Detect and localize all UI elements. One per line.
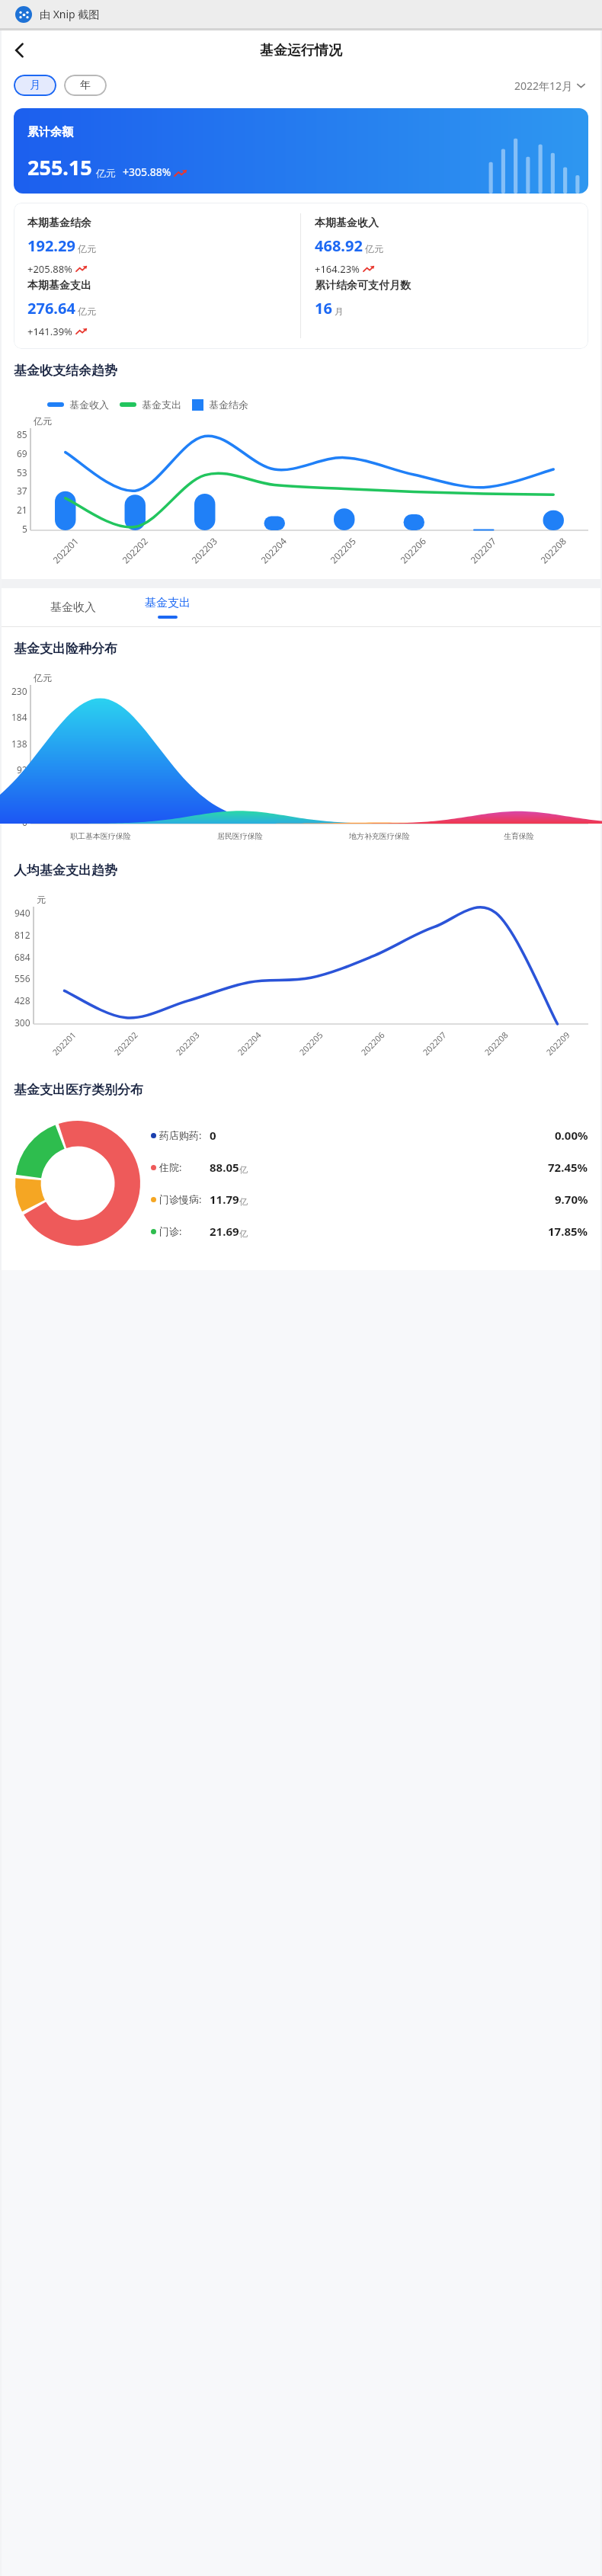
staticText: 基金支出医疗类别分布 (14, 1082, 143, 1098)
staticText: 88.05 (210, 1160, 239, 1175)
staticText: 住院: (159, 1160, 210, 1174)
staticText: 亿元 (34, 672, 52, 683)
staticText: 202203 (173, 1029, 202, 1058)
staticText: 85 (17, 428, 27, 440)
staticText: 53 (17, 466, 27, 478)
button[interactable]: 本期基金支出 (14, 276, 300, 338)
staticText: 202206 (397, 534, 429, 566)
staticText: 21 (17, 504, 27, 516)
staticText: 人均基金支出趋势 (14, 862, 117, 878)
staticText: 基金收入 (50, 600, 96, 615)
button[interactable]: 年 (64, 75, 107, 96)
staticText: 居民医疗保险 (217, 831, 263, 841)
staticText: 37 (17, 485, 27, 497)
staticText: 16 (315, 298, 332, 318)
staticText: 基金支出 (145, 596, 191, 610)
staticText: 202208 (482, 1029, 510, 1058)
staticText: +305.88% (123, 165, 171, 179)
staticText: 230 (11, 685, 27, 697)
button[interactable]: 2022年12月 (511, 75, 588, 96)
staticText: +164.23% (315, 262, 360, 276)
button[interactable]: 累计余额 (14, 108, 588, 194)
button[interactable]: 基金支出 (134, 593, 201, 622)
staticText: 亿 (239, 1228, 248, 1239)
staticText: 门诊: (159, 1224, 210, 1238)
staticText: 202208 (538, 534, 569, 566)
staticText: 255.15 (27, 153, 92, 181)
staticText: 月 (30, 78, 40, 92)
staticText: 11.79 (210, 1192, 239, 1207)
staticText: 202201 (50, 534, 81, 566)
staticText: 21.69 (210, 1224, 239, 1239)
staticText: 亿元 (34, 415, 52, 427)
staticText: 本期基金收入 (315, 216, 379, 230)
staticText: 5 (22, 523, 27, 535)
staticText: 基金支出 (142, 398, 181, 411)
staticText: 202202 (119, 534, 150, 566)
staticText: 基金支出险种分布 (14, 641, 117, 657)
button[interactable]: 返回 (2, 32, 38, 69)
staticText: 门诊慢病: (159, 1192, 210, 1206)
staticText: 0.00% (555, 1128, 588, 1143)
staticText: 69 (17, 447, 27, 459)
staticText: 基金结余 (209, 398, 248, 411)
staticText: 940 (14, 907, 30, 919)
button[interactable]: 月 (14, 75, 56, 96)
staticText: 202207 (468, 534, 499, 566)
staticText: 亿元 (78, 306, 96, 317)
staticText: 468.92 (315, 235, 363, 256)
staticText: 由 Xnip 截图 (40, 7, 100, 21)
button[interactable]: 本期基金收入 (301, 213, 588, 276)
staticText: 202201 (50, 1029, 78, 1058)
staticText: 202203 (189, 534, 220, 566)
staticText: +141.39% (27, 325, 72, 338)
staticText: 202207 (420, 1029, 449, 1058)
staticText: 202204 (258, 534, 289, 566)
staticText: 元 (37, 894, 46, 905)
staticText: 46 (17, 790, 27, 802)
staticText: 0 (22, 816, 27, 828)
staticText: 亿 (239, 1164, 248, 1175)
staticText: 生育保险 (504, 831, 534, 841)
staticText: 0 (210, 1128, 216, 1143)
staticText: 202206 (358, 1029, 387, 1058)
staticText: 地方补充医疗保险 (349, 831, 410, 841)
staticText: 累计余额 (27, 125, 73, 139)
staticText: 亿 (239, 1196, 248, 1207)
staticText: 684 (14, 951, 30, 963)
staticText: 202204 (235, 1029, 264, 1058)
staticText: 192.29 (27, 235, 75, 256)
staticText: 184 (11, 711, 27, 723)
staticText: 17.85% (548, 1224, 588, 1239)
staticText: 300 (14, 1016, 30, 1029)
staticText: 202202 (111, 1029, 140, 1058)
staticText: 428 (14, 994, 30, 1006)
staticText: 本期基金结余 (27, 216, 91, 230)
staticText: 基金运行情况 (260, 42, 342, 59)
staticText: 138 (11, 738, 27, 750)
staticText: 亿元 (365, 243, 383, 254)
staticText: 职工基本医疗保险 (70, 831, 131, 841)
button[interactable]: 基金收入 (40, 594, 107, 621)
staticText: 202205 (327, 534, 359, 566)
staticText: 92 (17, 763, 27, 776)
staticText: 月 (335, 306, 344, 317)
staticText: +205.88% (27, 262, 72, 276)
staticText: 202209 (544, 1029, 572, 1058)
staticText: 亿元 (78, 243, 96, 254)
staticText: 2022年12月 (514, 78, 573, 93)
staticText: 202205 (297, 1029, 325, 1058)
staticText: 556 (14, 972, 30, 984)
staticText: 药店购药: (159, 1128, 210, 1142)
staticText: 276.64 (27, 298, 75, 318)
staticText: 基金收入 (69, 398, 109, 411)
button[interactable]: 本期基金结余 (14, 213, 300, 276)
staticText: 9.70% (555, 1192, 588, 1207)
staticText: 年 (80, 78, 91, 92)
staticText: 72.45% (548, 1160, 588, 1175)
staticText: 812 (14, 929, 30, 941)
button[interactable]: 累计结余可支付月数 (301, 276, 588, 338)
staticText: 亿元 (96, 167, 116, 179)
staticText: 累计结余可支付月数 (315, 279, 411, 293)
staticText: 基金收支结余趋势 (14, 363, 117, 379)
